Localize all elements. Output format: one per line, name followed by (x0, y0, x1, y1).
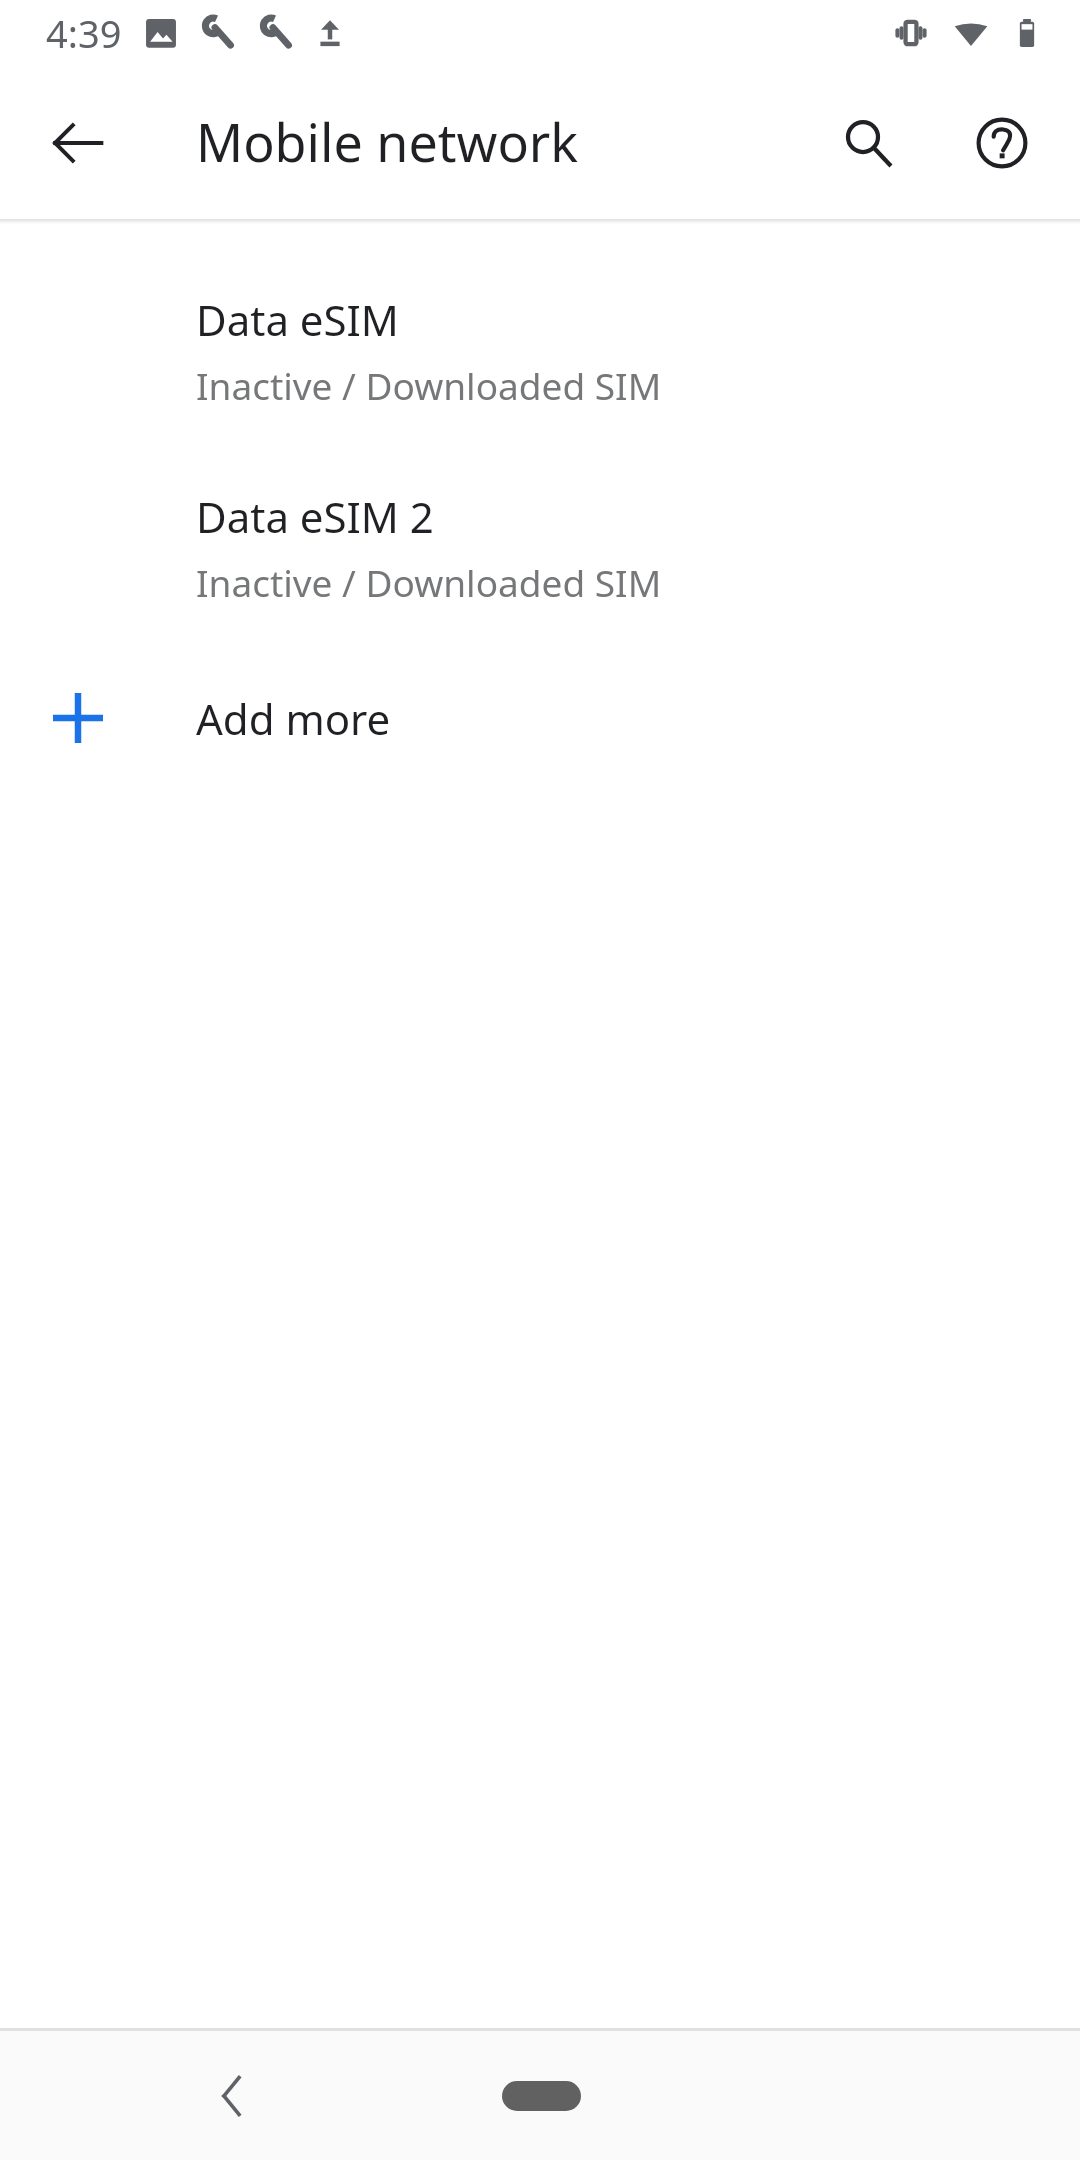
button[interactable]: Back (186, 2048, 282, 2144)
staticText: Add more (196, 690, 391, 747)
button[interactable]: Data eSIM 2 (0, 449, 1080, 646)
button[interactable]: Search (812, 87, 924, 199)
staticText: Data eSIM 2 (196, 488, 434, 545)
staticText: Data eSIM (196, 291, 399, 348)
button[interactable]: Navigate up (22, 87, 134, 199)
staticText: Inactive / Downloaded SIM (196, 360, 662, 410)
button[interactable]: Add more (0, 646, 1080, 790)
staticText: Mobile network (196, 106, 579, 177)
staticText: 4:39 (46, 7, 122, 59)
button[interactable]: Data eSIM (0, 252, 1080, 449)
button[interactable]: Home (481, 2065, 601, 2127)
staticText: Inactive / Downloaded SIM (196, 557, 662, 607)
button[interactable]: Help (946, 87, 1058, 199)
